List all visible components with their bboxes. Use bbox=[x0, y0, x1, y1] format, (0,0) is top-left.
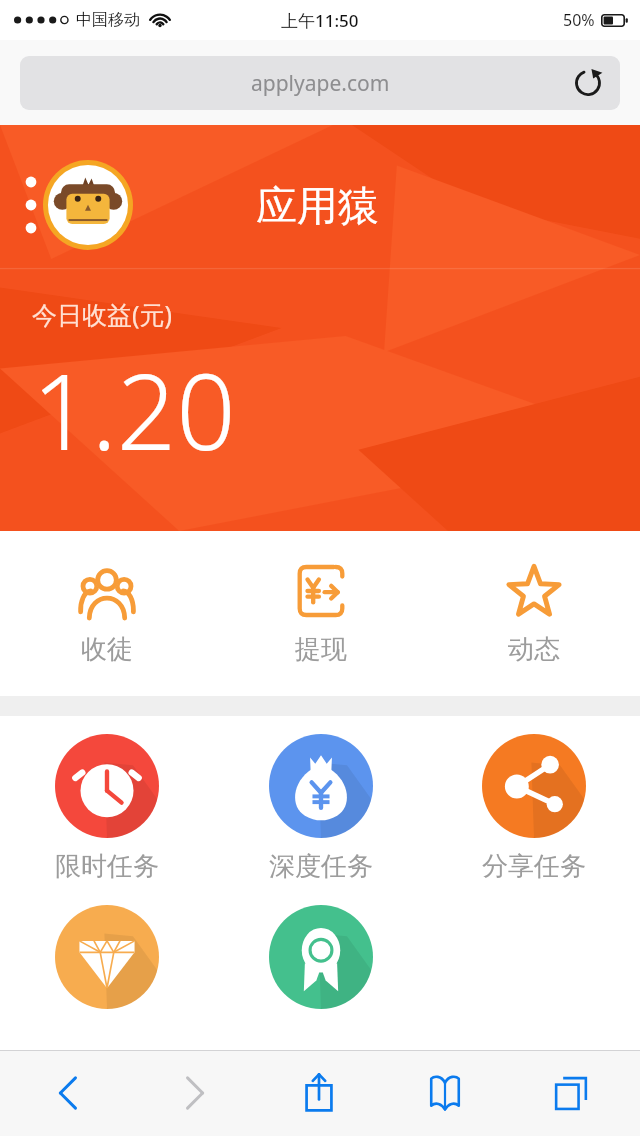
button[interactable]: Forward bbox=[131, 1050, 256, 1136]
button[interactable]: 深度任务 bbox=[214, 734, 427, 883]
button[interactable]: 收徒 bbox=[0, 531, 214, 696]
button[interactable]: 动态 bbox=[427, 531, 640, 696]
button[interactable]: Menu bbox=[14, 167, 48, 243]
staticText: 提现 bbox=[295, 633, 347, 666]
button[interactable]: Reload bbox=[570, 65, 606, 101]
staticText: 1.20 bbox=[32, 339, 236, 481]
button[interactable]: applyape.com bbox=[20, 56, 620, 110]
staticText: 50% bbox=[563, 9, 595, 31]
button[interactable] bbox=[214, 905, 427, 1009]
staticText: 深度任务 bbox=[269, 850, 373, 883]
staticText: applyape.com bbox=[251, 69, 390, 98]
staticText: 今日收益(元) bbox=[32, 297, 173, 331]
button[interactable]: 分享任务 bbox=[427, 734, 640, 883]
staticText: 分享任务 bbox=[482, 850, 586, 883]
button[interactable]: 提现 bbox=[214, 531, 427, 696]
button[interactable]: Avatar bbox=[43, 160, 133, 250]
button[interactable]: Share bbox=[256, 1050, 382, 1136]
button[interactable]: Bookmarks bbox=[382, 1050, 508, 1136]
button[interactable]: Tabs bbox=[508, 1050, 634, 1136]
staticText: 动态 bbox=[508, 633, 560, 666]
staticText: 应用猿 bbox=[256, 181, 379, 233]
button[interactable] bbox=[0, 905, 214, 1009]
button[interactable]: Back bbox=[6, 1050, 131, 1136]
staticText: 上午11:50 bbox=[281, 9, 359, 32]
staticText: 收徒 bbox=[81, 633, 133, 666]
staticText: 中国移动 bbox=[76, 10, 140, 30]
staticText: 限时任务 bbox=[55, 850, 159, 883]
button[interactable]: 限时任务 bbox=[0, 734, 214, 883]
